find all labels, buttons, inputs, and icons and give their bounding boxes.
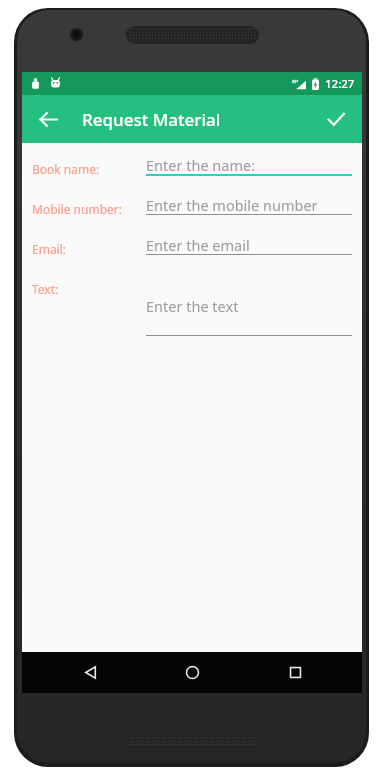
button[interactable]: Email: [22, 223, 362, 263]
button[interactable]: Submit [316, 99, 356, 139]
staticText: Enter the text [146, 296, 239, 316]
staticText: Enter the name: [146, 155, 256, 175]
staticText: Enter the mobile number [146, 195, 318, 215]
staticText: Enter the email [146, 235, 250, 255]
button[interactable]: Book name: [22, 143, 362, 183]
button[interactable]: Recent apps [260, 652, 330, 693]
staticText: 12:27 [325, 76, 355, 92]
button[interactable]: Back [55, 652, 125, 693]
staticText: Text: [32, 281, 59, 297]
staticText: Request Material [82, 108, 221, 131]
staticText: Mobile number: [32, 201, 122, 217]
staticText: Email: [32, 241, 67, 257]
button[interactable]: Back [28, 99, 68, 139]
staticText: Book name: [32, 161, 100, 177]
button[interactable]: Home [157, 652, 227, 693]
button[interactable]: Mobile number: [22, 183, 362, 223]
